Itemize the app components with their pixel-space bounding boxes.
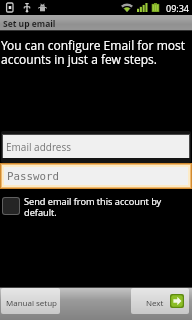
button[interactable]: Next bbox=[131, 288, 189, 314]
other: Next bbox=[170, 294, 184, 308]
staticText: Password bbox=[7, 170, 60, 183]
button[interactable]: Manual setup bbox=[1, 288, 60, 314]
button[interactable]: Password bbox=[0, 163, 192, 190]
staticText: Manual setup bbox=[6, 297, 57, 308]
button[interactable]: Email address bbox=[0, 130, 192, 164]
staticText: 09:34 bbox=[166, 2, 189, 14]
button[interactable]: Set up email bbox=[0, 15, 192, 30]
staticText: Set up email bbox=[3, 18, 56, 30]
staticText: Send email from this account by default. bbox=[24, 195, 188, 218]
button[interactable]: Send email from this account by default. bbox=[2, 195, 188, 223]
staticText: Email address bbox=[6, 140, 71, 154]
staticText: Next bbox=[146, 297, 164, 308]
staticText: You can configure Email for most account… bbox=[1, 37, 189, 68]
